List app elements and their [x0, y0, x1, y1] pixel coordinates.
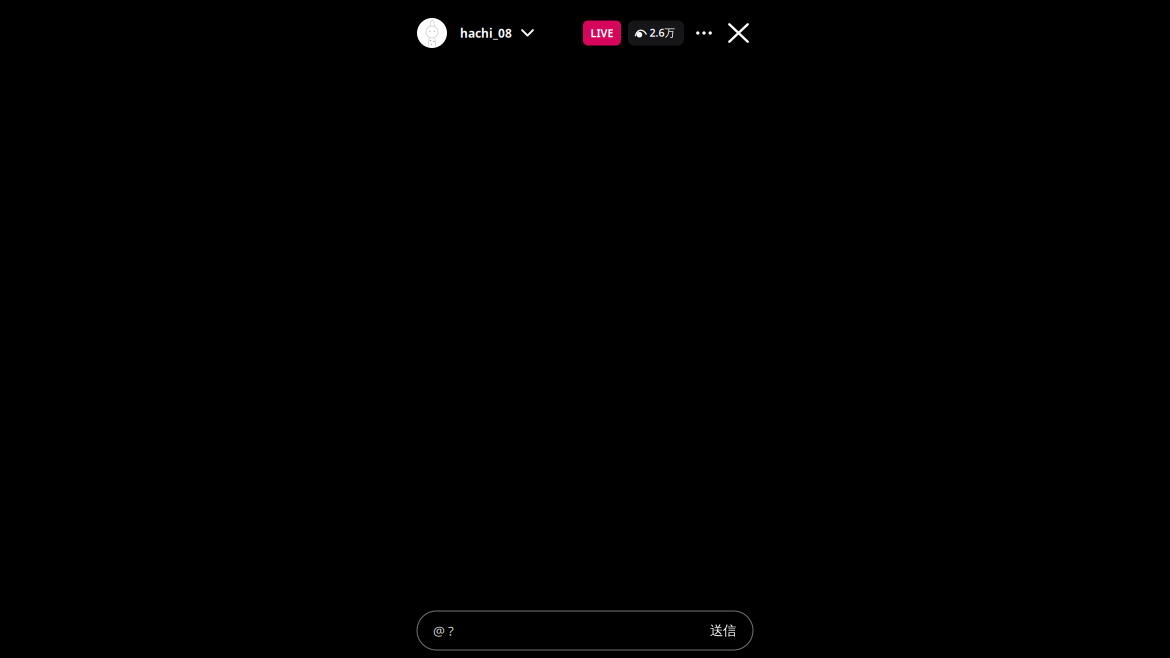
button[interactable]: LIVE: [583, 20, 621, 45]
staticText: LIVE: [590, 26, 613, 40]
staticText: @ ?: [433, 622, 454, 639]
staticText: 2.6万: [650, 25, 676, 40]
button[interactable]: hachi_08: [417, 18, 534, 48]
staticText: hachi_08: [460, 25, 512, 41]
button[interactable]: Add a comment: [417, 611, 753, 650]
button[interactable]: 2.6万: [628, 20, 684, 45]
button[interactable]: More options: [697, 26, 711, 40]
button[interactable]: Close live video: [728, 22, 749, 43]
staticText: 送信: [710, 622, 736, 639]
button[interactable]: 送信: [698, 611, 753, 650]
